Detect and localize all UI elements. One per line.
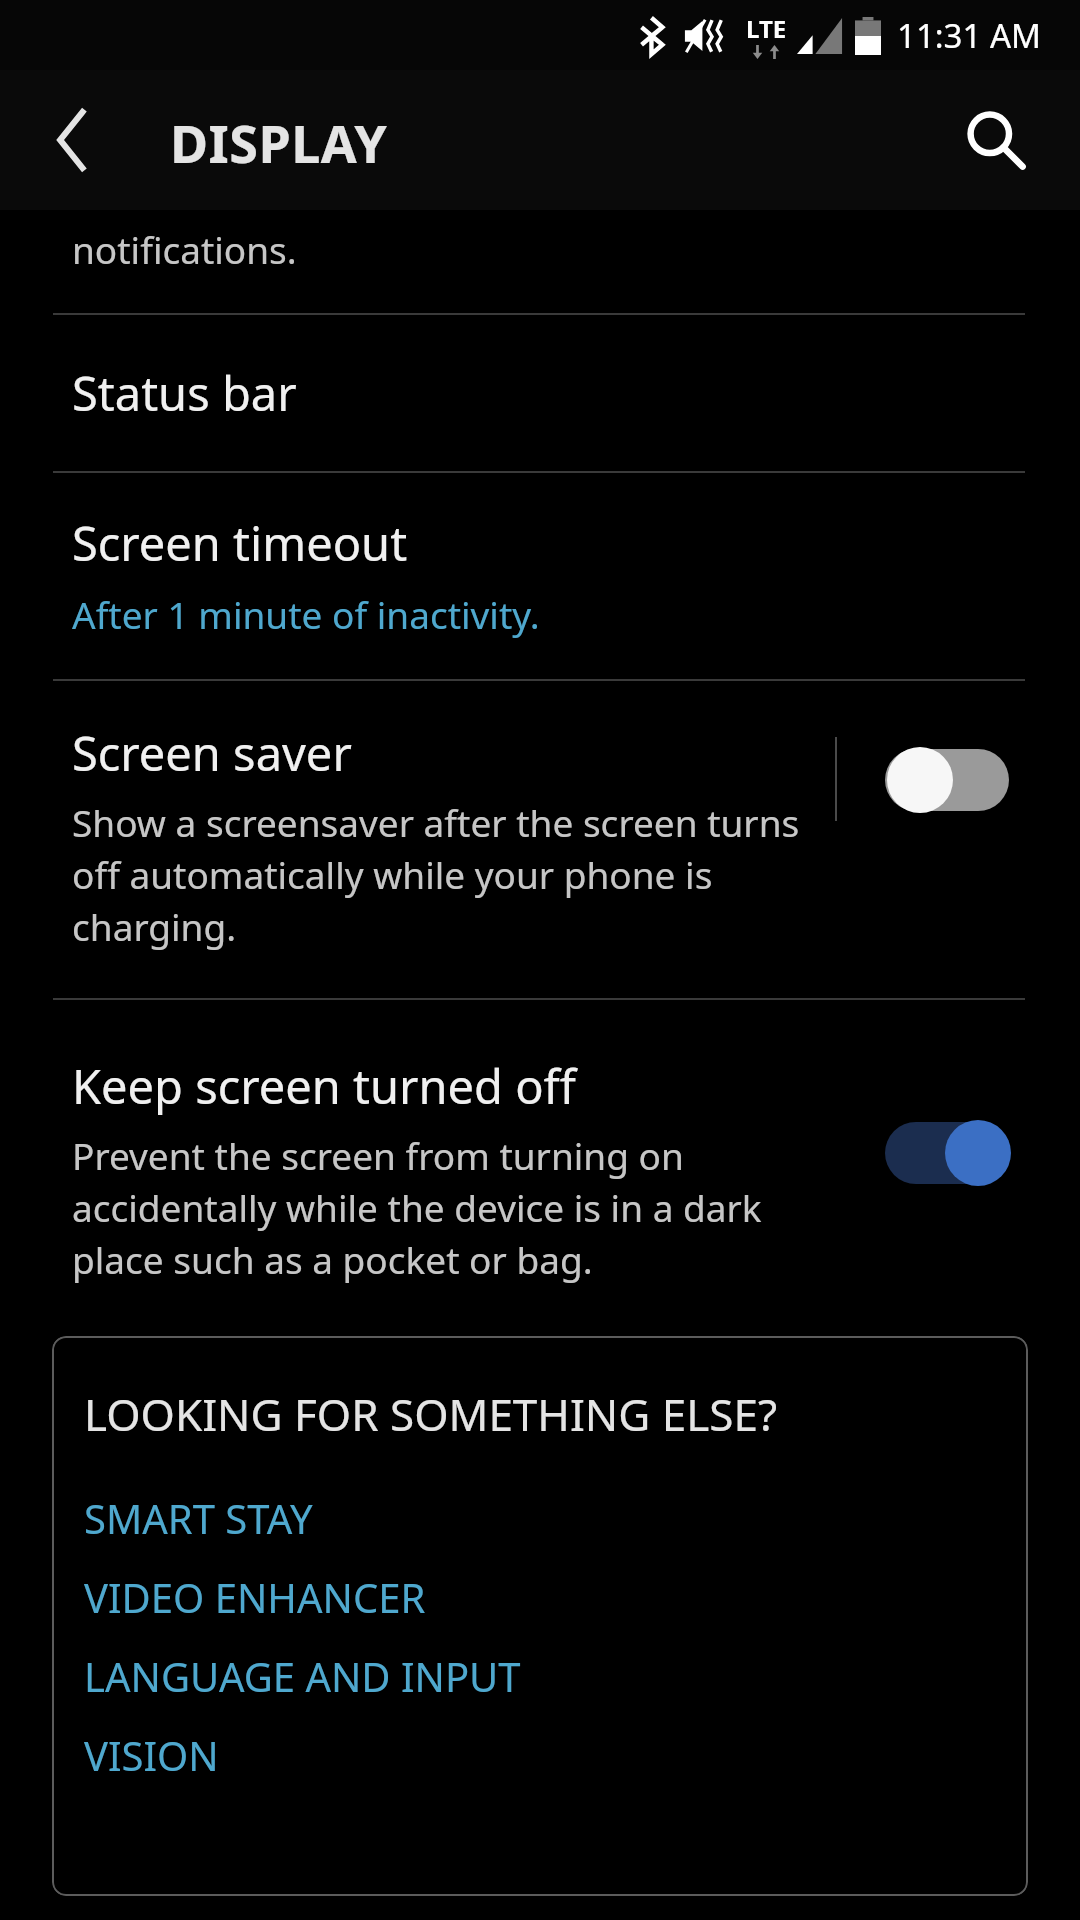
button[interactable]: Keep screen turned off toggle, on (885, 1116, 1009, 1190)
staticText: After 1 minute of inactivity. (72, 589, 540, 639)
staticText: Status bar (72, 361, 297, 425)
staticText: Keep screen turned off (72, 1054, 576, 1118)
button[interactable]: Status bar (0, 315, 1080, 471)
button[interactable]: Screen saver toggle, off (885, 743, 1009, 817)
staticText: VISION (84, 1728, 219, 1782)
staticText: VIDEO ENHANCER (84, 1570, 426, 1624)
button[interactable]: VIDEO ENHANCER (84, 1557, 984, 1636)
button[interactable]: Search (948, 92, 1044, 188)
button[interactable]: Screen saver (0, 681, 1080, 998)
staticText: Prevent the screen from turning on accid… (72, 1130, 842, 1285)
button[interactable]: VISION (84, 1715, 984, 1794)
staticText: Screen timeout (72, 511, 408, 575)
staticText: SMART STAY (84, 1491, 313, 1545)
staticText: Screen saver (72, 721, 352, 785)
button[interactable]: Back (30, 97, 116, 183)
staticText: LTE (746, 12, 787, 45)
staticText: LANGUAGE AND INPUT (84, 1649, 521, 1703)
button[interactable]: Screen timeout (0, 473, 1080, 679)
button[interactable]: SMART STAY (84, 1478, 984, 1557)
button[interactable]: Keep screen turned off (0, 1000, 1080, 1314)
staticText: LOOKING FOR SOMETHING ELSE? (84, 1384, 777, 1444)
staticText: 11:31 AM (897, 13, 1041, 58)
button[interactable]: LANGUAGE AND INPUT (84, 1636, 984, 1715)
button[interactable]: notifications. (0, 210, 1080, 313)
staticText: notifications. (72, 224, 297, 274)
staticText: DISPLAY (170, 107, 388, 178)
staticText: Show a screensaver after the screen turn… (72, 797, 812, 952)
